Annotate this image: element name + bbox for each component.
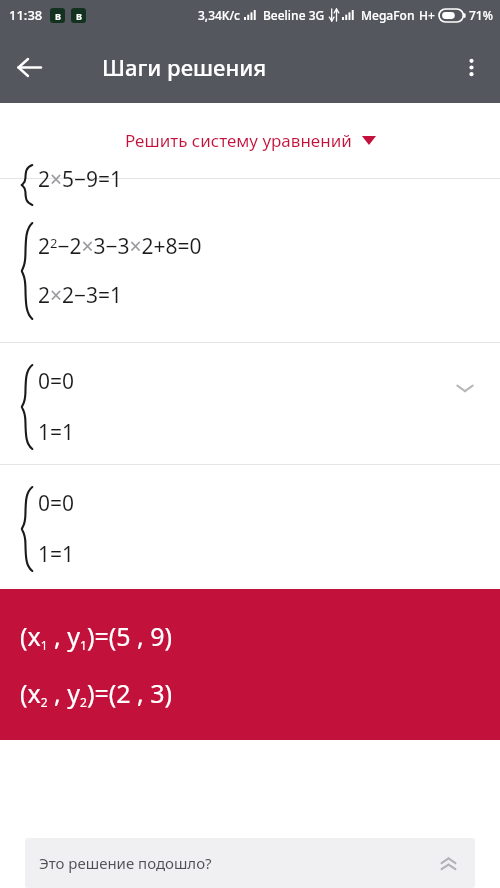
staticText: Это решение подошло? xyxy=(39,853,212,873)
staticText: 2×2−3=1 xyxy=(38,281,123,310)
staticText: 71% xyxy=(469,7,493,23)
button[interactable]: Expand step xyxy=(442,365,488,411)
staticText: H+ xyxy=(419,7,435,23)
staticText: 3,34K/c xyxy=(198,7,240,23)
staticText: 2×5−9=1 xyxy=(38,165,123,194)
button[interactable]: Back xyxy=(0,38,58,96)
button[interactable]: More options xyxy=(442,38,500,96)
button[interactable]: Это решение подошло? xyxy=(25,838,475,888)
button[interactable]: Решить систему уравнений xyxy=(0,103,500,178)
staticText: (x2 , y2)=(2 , 3) xyxy=(20,676,173,711)
staticText: (x1 , y1)=(5 , 9) xyxy=(20,619,173,654)
staticText: 1=1 xyxy=(38,418,75,447)
staticText: Решить систему уравнений xyxy=(125,129,352,152)
button[interactable]: 22−2×3−3×2+8=0 xyxy=(0,219,500,319)
staticText: 0=0 xyxy=(38,489,75,518)
staticText: 1=1 xyxy=(38,540,75,569)
staticText: 22−2×3−3×2+8=0 xyxy=(38,232,202,261)
staticText: B xyxy=(55,10,61,22)
button[interactable]: 2×5−9=1 xyxy=(0,179,500,219)
staticText: 11:38 xyxy=(9,6,43,24)
staticText: Beeline 3G xyxy=(263,7,325,23)
staticText: Шаги решения xyxy=(102,52,267,82)
staticText: 0=0 xyxy=(38,367,75,396)
staticText: MegaFon xyxy=(361,7,415,23)
button[interactable]: (x1 , y1)=(5 , 9) xyxy=(0,589,500,740)
staticText: B xyxy=(76,10,82,22)
